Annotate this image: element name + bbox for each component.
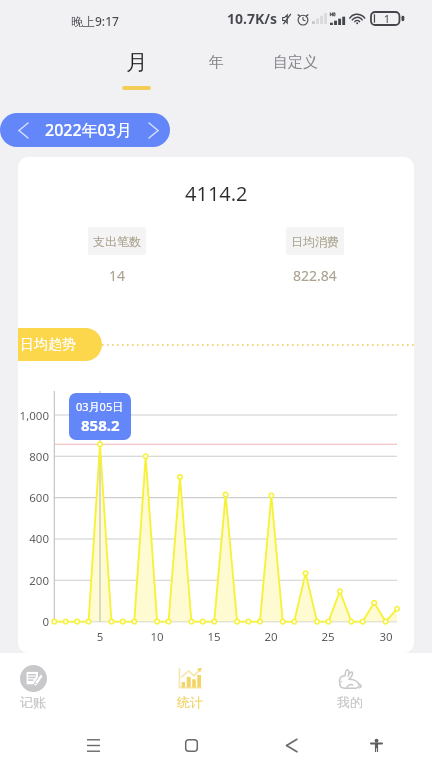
staticText: 10 [145,629,169,645]
staticText: 822.84 [293,266,337,285]
staticText: 日均消费 [291,234,339,249]
staticText: 03月05日 [76,399,124,414]
staticText: 日均趋势 [20,336,76,354]
button[interactable]: Home [171,725,211,765]
staticText: 支出笔数 [93,234,141,249]
button[interactable]: 自定义 [261,44,329,94]
button[interactable]: 记账 [3,657,63,715]
staticText: 25 [316,629,340,645]
staticText: 10.7K/s [227,9,278,28]
staticText: 年 [209,53,224,72]
staticText: 30 [374,629,398,645]
staticText: 记账 [20,694,46,710]
button[interactable]: 统计 [160,657,220,715]
button[interactable]: 2022年03月 [0,113,170,147]
staticText: 5 [88,629,112,645]
staticText: 1 [384,12,390,26]
staticText: 晚上9:17 [71,13,119,29]
button[interactable]: 年 [194,44,238,94]
staticText: 2022年03月 [45,119,132,141]
button[interactable]: Recents [73,725,113,765]
button[interactable]: Back [271,725,311,765]
staticText: 14 [109,266,126,285]
staticText: 我的 [337,694,363,710]
staticText: 858.2 [81,415,120,435]
staticText: 20 [259,629,283,645]
staticText: 自定义 [273,53,318,72]
staticText: 统计 [177,694,203,710]
staticText: 200 [18,573,49,589]
staticText: 400 [18,531,49,547]
staticText: 800 [18,449,49,465]
button[interactable]: 我的 [320,657,380,715]
staticText: 0 [18,614,49,630]
staticText: 600 [18,490,49,506]
staticText: 月 [126,49,148,77]
staticText: 1,000 [18,408,49,424]
staticText: 15 [202,629,226,645]
button[interactable]: 月 [114,44,158,94]
button[interactable]: Accessibility [356,725,396,765]
staticText: 4114.2 [185,180,248,207]
